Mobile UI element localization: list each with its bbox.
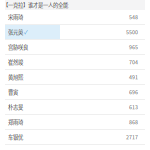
staticText: 宫胁咲良 [8, 43, 28, 51]
staticText: 2717 [126, 133, 138, 141]
button[interactable]: 郑雨琦 [5, 115, 145, 129]
staticText: 崔然竣 [8, 58, 23, 66]
staticText: 车银优 [8, 133, 23, 141]
button[interactable]: 崔然竣 [5, 55, 145, 69]
button[interactable]: 宫胁咲良 [5, 40, 145, 54]
staticText: 704 [129, 58, 138, 66]
button[interactable]: 车银优 [5, 130, 145, 144]
staticText: 696 [129, 88, 138, 96]
button[interactable]: 曹寅 [5, 85, 145, 99]
staticText: 黄旭熙 [8, 73, 23, 81]
button[interactable]: 黄旭熙 [5, 70, 145, 84]
staticText: 【一克拉】谁才是一人的全能 [3, 1, 68, 9]
staticText: 5500 [126, 28, 138, 36]
button[interactable]: 张元英 [5, 25, 145, 39]
staticText: 朴志旻 [8, 103, 23, 111]
button[interactable]: 宋雨琦 [5, 10, 145, 24]
staticText: 曹寅 [8, 88, 18, 96]
staticText: 965 [129, 43, 138, 51]
staticText: 郑雨琦 [8, 118, 23, 126]
staticText: 491 [129, 73, 138, 81]
staticText: 868 [129, 118, 138, 126]
staticText: 宋雨琦 [8, 13, 23, 21]
staticText: ✓ [23, 28, 28, 36]
staticText: 613 [129, 103, 138, 111]
button[interactable]: 朴志旻 [5, 100, 145, 114]
staticText: 548 [129, 13, 138, 21]
staticText: 张元英 [8, 28, 23, 36]
